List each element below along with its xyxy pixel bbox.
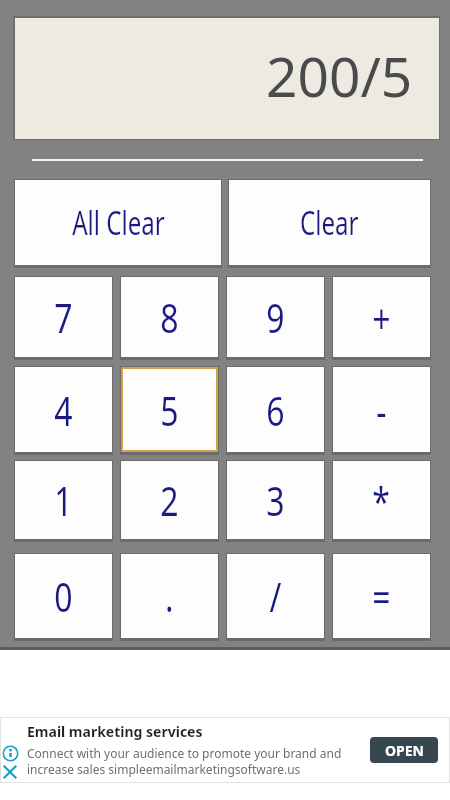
button[interactable]: 1 [15,461,112,539]
staticText: Connect with your audience to promote yo… [27,745,342,761]
staticText: 3 [266,473,285,527]
button[interactable]: OPEN [370,737,438,763]
button[interactable]: Email marketing services [0,717,450,783]
button[interactable]: * [333,461,430,539]
button[interactable]: 5 [121,367,218,452]
button[interactable]: / [227,554,324,638]
staticText: 2 [160,473,179,527]
staticText: 0 [54,569,73,623]
staticText: + [372,290,391,344]
staticText: . [165,569,174,623]
staticText: 1 [54,473,73,527]
staticText: 5 [160,383,179,437]
staticText: 200/5 [266,38,413,113]
button[interactable]: Clear [229,180,430,265]
button[interactable]: 9 [227,277,324,357]
button[interactable]: 2 [121,461,218,539]
staticText: increase sales simpleemailmarketingsoftw… [27,761,301,777]
button[interactable]: 0 [15,554,112,638]
button[interactable]: 3 [227,461,324,539]
button[interactable]: 7 [15,277,112,357]
staticText: 6 [266,383,285,437]
button[interactable]: All Clear [15,180,221,265]
button[interactable]: + [333,277,430,357]
staticText: = [372,569,391,623]
staticText: 8 [160,290,179,344]
button[interactable]: 8 [121,277,218,357]
staticText: Clear [300,200,359,245]
button[interactable] [2,745,19,762]
staticText: * [372,473,391,527]
button[interactable]: . [121,554,218,638]
staticText: - [376,383,387,437]
staticText: 7 [54,290,73,344]
button[interactable]: 6 [227,367,324,452]
button[interactable]: 200/5 [15,18,439,139]
staticText: 9 [266,290,285,344]
button[interactable] [3,765,17,779]
staticText: Email marketing services [27,722,203,741]
staticText: All Clear [72,200,165,245]
button[interactable]: - [333,367,430,452]
button[interactable]: 4 [15,367,112,452]
staticText: / [269,569,281,623]
button[interactable]: = [333,554,430,638]
staticText: 4 [54,383,73,437]
staticText: OPEN [385,741,424,760]
